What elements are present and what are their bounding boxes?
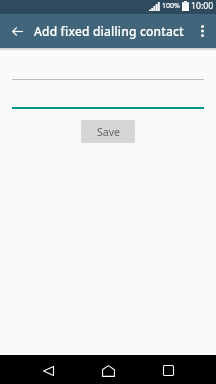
button[interactable]: Save	[81, 120, 135, 143]
staticText: Save	[97, 125, 120, 139]
button[interactable]: Recent apps	[150, 355, 186, 384]
staticText: 100%	[162, 1, 180, 11]
staticText: Add fixed dialling contact	[34, 23, 188, 39]
button[interactable]: Number field	[0, 80, 216, 109]
button[interactable]: More options	[188, 17, 216, 45]
button[interactable]: Name field	[0, 51, 216, 80]
button[interactable]: Navigate up	[0, 14, 34, 48]
staticText: 10:00	[191, 0, 214, 12]
button[interactable]: Home	[90, 355, 126, 384]
button[interactable]: Back	[30, 355, 66, 384]
